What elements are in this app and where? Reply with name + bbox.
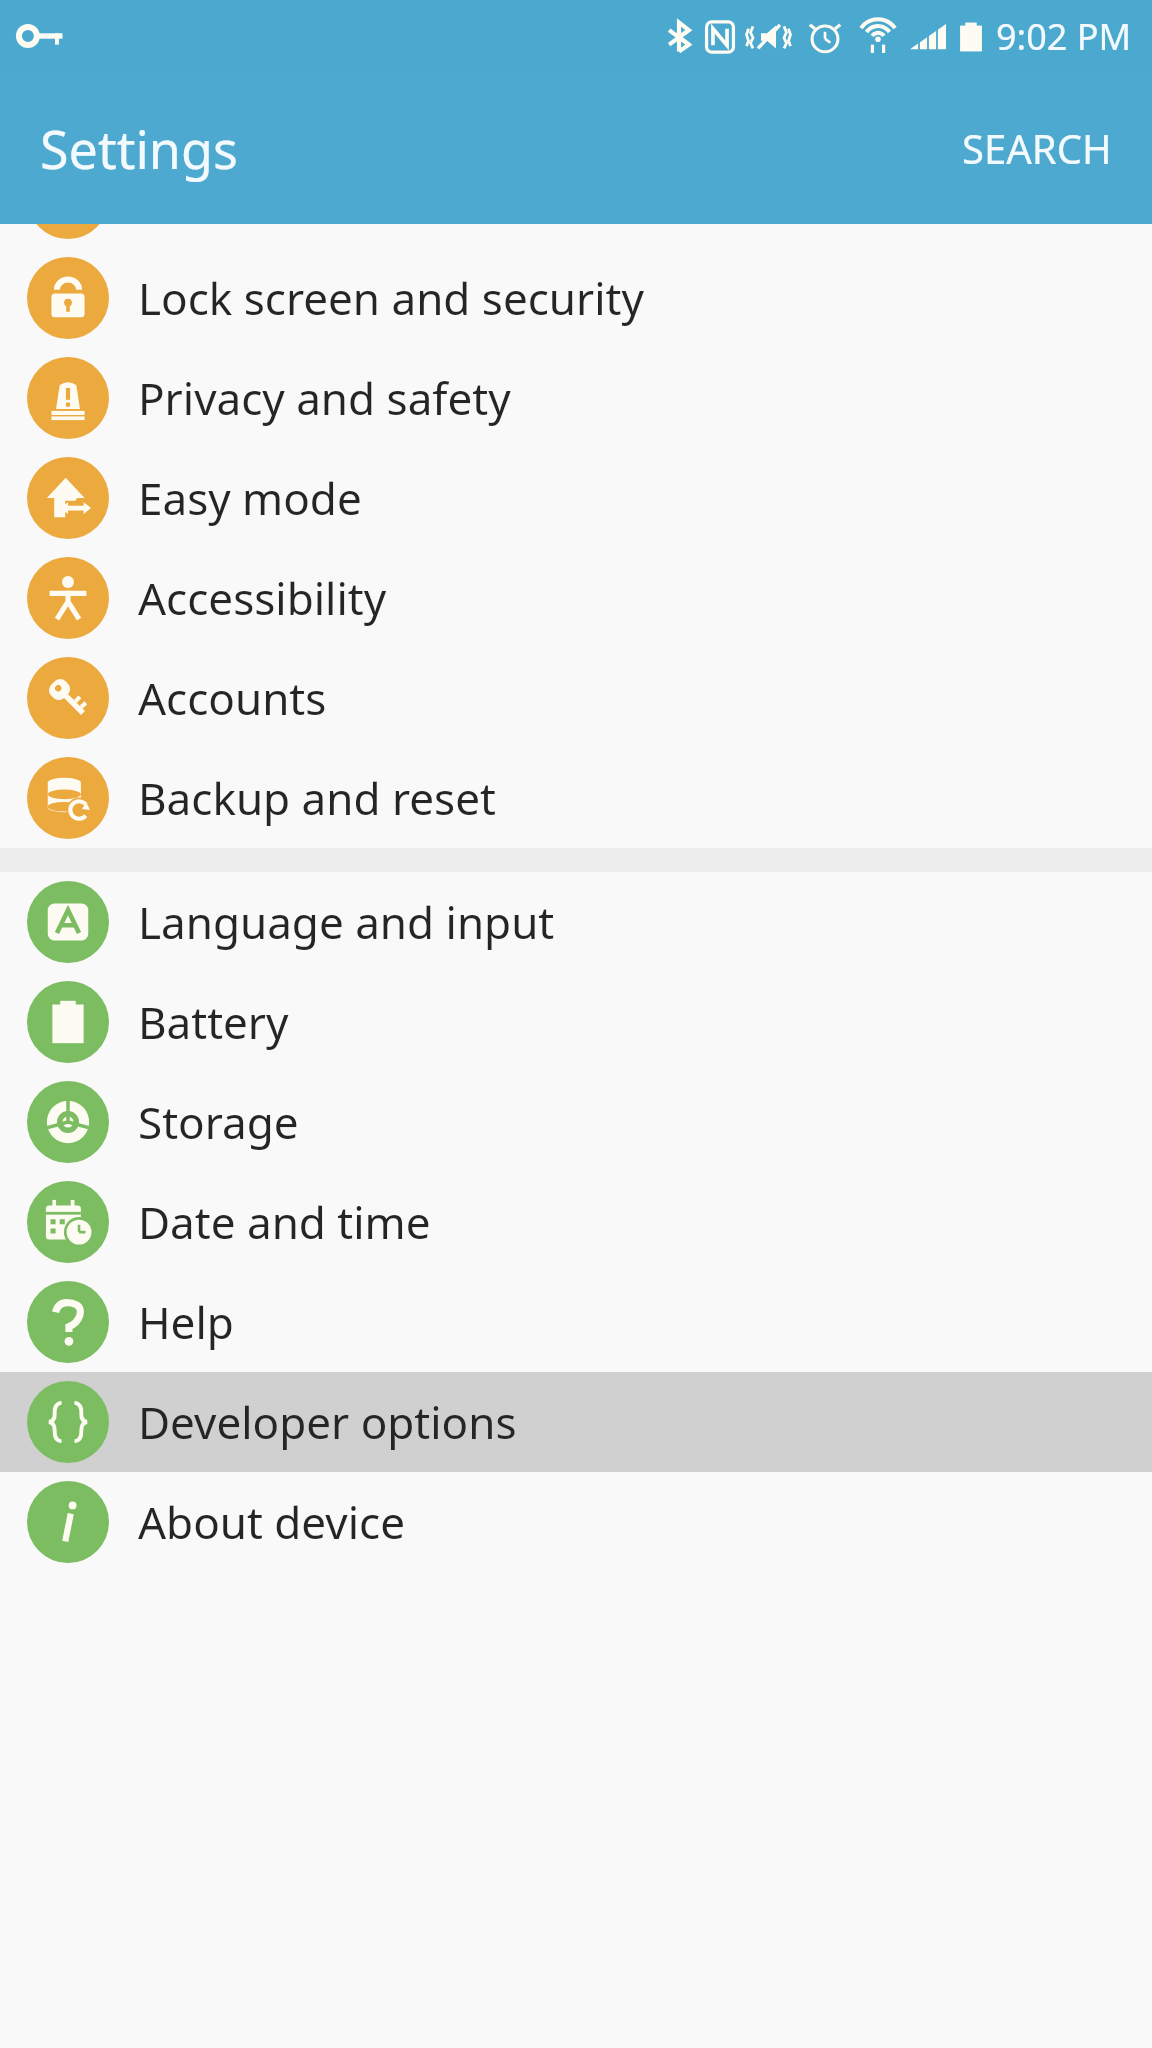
staticText: Settings (40, 113, 238, 184)
button[interactable]: Privacy and safety (0, 348, 1152, 448)
staticText: Privacy and safety (138, 368, 511, 428)
staticText: Themes (138, 168, 302, 228)
staticText: Date and time (138, 1192, 431, 1252)
button[interactable]: Accounts (0, 648, 1152, 748)
staticText: Language and input (138, 892, 555, 952)
button[interactable]: Help (0, 1272, 1152, 1372)
button[interactable]: Easy mode (0, 448, 1152, 548)
button[interactable]: Date and time (0, 1172, 1152, 1272)
staticText: Help (138, 1292, 234, 1352)
button[interactable]: Language and input (0, 872, 1152, 972)
staticText: Accounts (138, 668, 327, 728)
staticText: Backup and reset (138, 768, 496, 828)
button[interactable]: Themes (0, 148, 1152, 248)
staticText: About device (138, 1492, 405, 1552)
staticText: Accessibility (138, 568, 387, 628)
staticText: Lock screen and security (138, 268, 644, 328)
button[interactable]: About device (0, 1472, 1152, 1572)
staticText: Battery (138, 992, 289, 1052)
staticText: Developer options (138, 1392, 517, 1452)
button[interactable]: Backup and reset (0, 748, 1152, 848)
staticText: Storage (138, 1092, 299, 1152)
staticText: SEARCH (962, 121, 1112, 175)
button[interactable]: Accessibility (0, 548, 1152, 648)
staticText: 9:02 PM (996, 12, 1132, 61)
button[interactable]: Storage (0, 1072, 1152, 1172)
button[interactable]: Lock screen and security (0, 248, 1152, 348)
button[interactable]: Developer options (0, 1372, 1152, 1472)
button[interactable]: SEARCH (922, 91, 1152, 205)
staticText: Easy mode (138, 468, 362, 528)
button[interactable]: Battery (0, 972, 1152, 1072)
